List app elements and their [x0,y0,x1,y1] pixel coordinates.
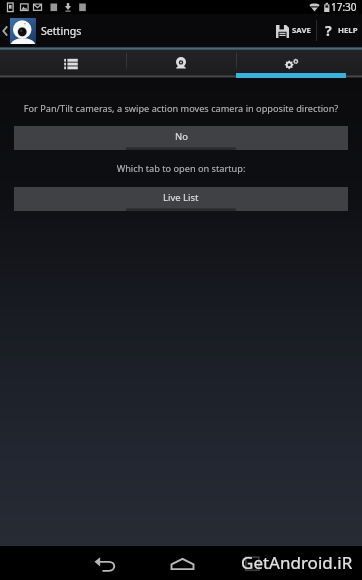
staticText: ? [325,21,332,40]
staticText: Settings [41,24,82,38]
button[interactable]: Live List [14,187,348,211]
button[interactable]: Back [0,546,120,580]
button[interactable]: SAVE [268,14,316,47]
button[interactable]: Home [120,546,241,580]
staticText: HELP [338,25,358,36]
staticText: 17:30 [331,0,357,14]
button[interactable]: Recent apps [241,546,362,580]
button[interactable]: Settings tab [236,50,346,77]
button[interactable]: Navigate up [0,18,36,44]
staticText: SAVE [292,25,311,36]
button[interactable]: ? [317,14,362,47]
staticText: No [175,130,188,143]
button[interactable]: No [14,126,348,150]
staticText: GetAndroid.iR [241,551,353,574]
button[interactable]: Live list tab [16,50,126,77]
button[interactable]: Camera tab [126,50,236,77]
staticText: Which tab to open on startup: [0,162,362,175]
staticText: For Pan/Tilt cameras, a swipe action mov… [0,102,362,115]
staticText: Live List [163,191,199,204]
